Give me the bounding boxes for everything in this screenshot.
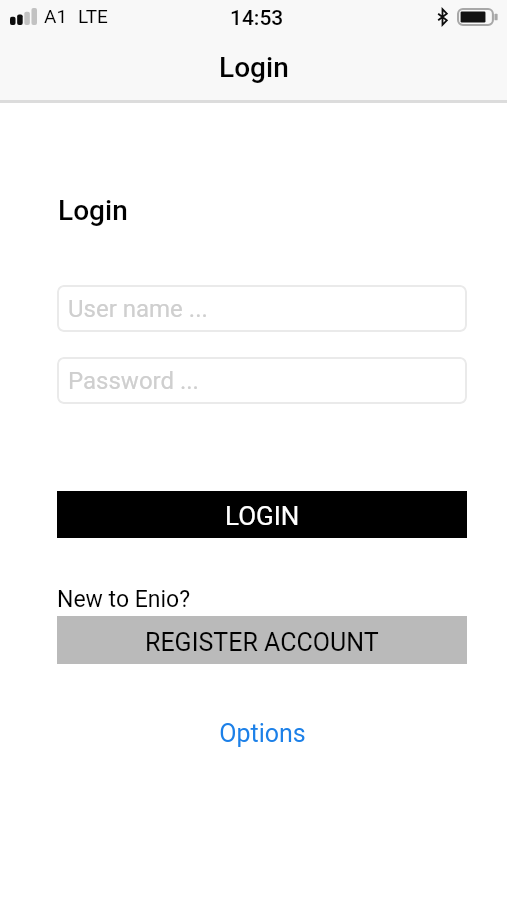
button[interactable]: Options	[57, 719, 467, 748]
staticText: A1	[44, 5, 68, 27]
other: Battery	[457, 8, 499, 26]
button[interactable]: LOGIN	[57, 491, 467, 538]
staticText: Login	[219, 51, 289, 84]
staticText: 14:53	[230, 6, 284, 31]
button[interactable]: User name ...	[57, 285, 467, 332]
staticText: Options	[219, 719, 306, 748]
staticText: REGISTER ACCOUNT	[145, 628, 379, 657]
staticText: User name ...	[68, 295, 208, 323]
button[interactable]: Password ...	[57, 357, 467, 404]
staticText: New to Enio?	[57, 586, 191, 613]
staticText: Login	[58, 194, 128, 227]
button[interactable]: REGISTER ACCOUNT	[57, 616, 467, 664]
staticText: Password ...	[68, 367, 199, 395]
staticText: LOGIN	[225, 501, 300, 531]
staticText: LTE	[78, 5, 108, 27]
other: Bluetooth	[438, 9, 447, 25]
